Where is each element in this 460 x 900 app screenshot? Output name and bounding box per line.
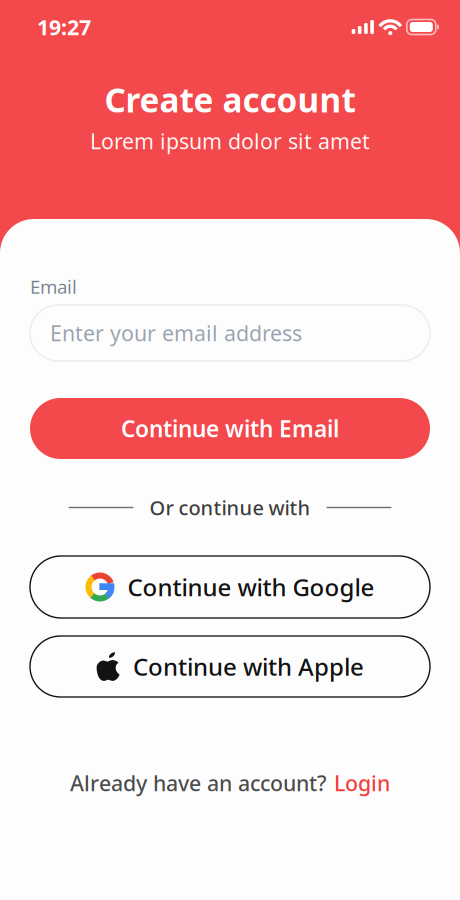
button[interactable]: Continue with Apple <box>30 636 430 697</box>
staticText: Continue with Apple <box>133 651 364 682</box>
staticText: Or continue with <box>149 494 310 521</box>
staticText: Login <box>334 769 390 797</box>
staticText: Continue with Email <box>121 413 339 443</box>
button[interactable]: Continue with Email <box>30 398 430 459</box>
staticText: Enter your email address <box>50 319 302 347</box>
button[interactable]: Already have an account? <box>30 770 430 796</box>
button[interactable]: Continue with Google <box>30 556 430 618</box>
staticText: Create account <box>104 77 355 122</box>
staticText: Email <box>30 274 77 299</box>
button[interactable]: Enter your email address <box>30 305 430 361</box>
staticText: Continue with Google <box>127 571 374 603</box>
staticText: Already have an account? <box>70 769 327 797</box>
staticText: 19:27 <box>37 13 91 41</box>
staticText: Lorem ipsum dolor sit amet <box>90 127 370 155</box>
